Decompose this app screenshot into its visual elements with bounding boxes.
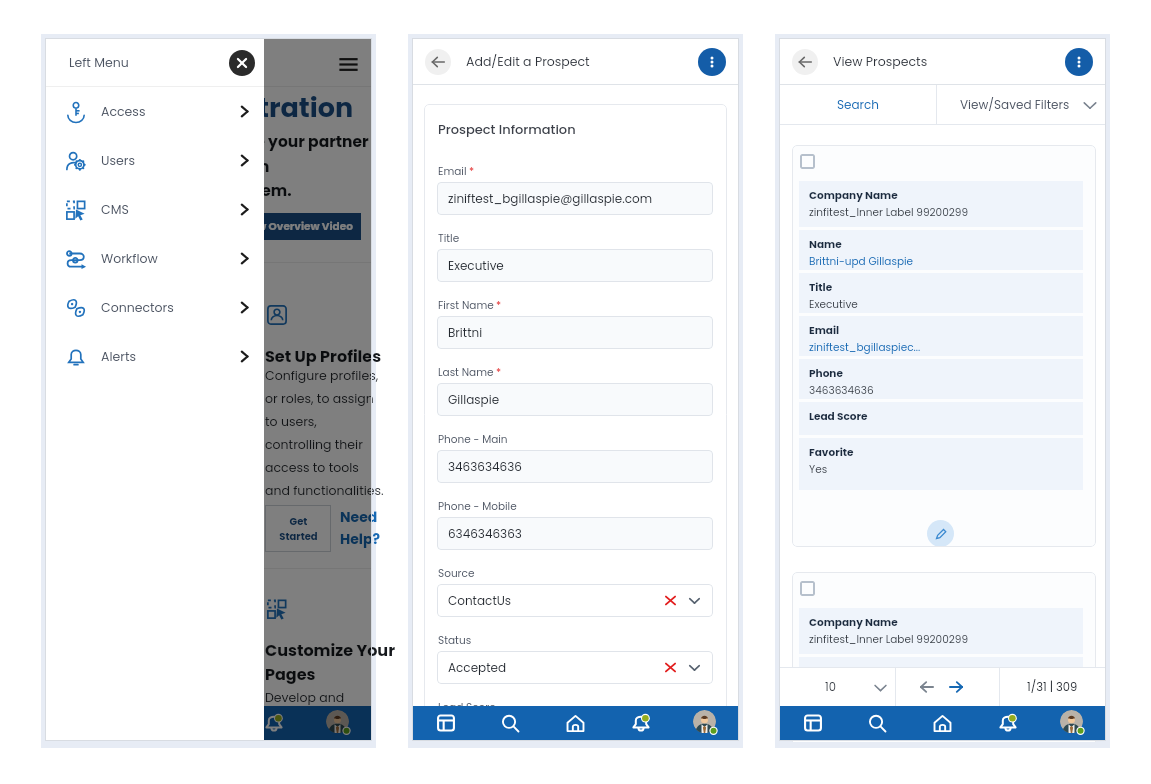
staticText: 3463634636 [809,383,874,398]
staticText: Brittni-upd Gillaspie [809,681,914,696]
staticText: Brittni-upd Gillaspie [809,254,914,269]
staticText: ziniftest_bgillaspiec... [809,340,921,355]
staticText: Access [101,103,146,120]
button[interactable]: More options [1065,48,1093,76]
staticText: Executive [448,257,702,274]
staticText: Name [809,664,842,679]
staticText: Title [809,280,833,295]
button[interactable]: Workflow [46,234,264,283]
staticText: Status [438,633,472,648]
button[interactable]: Notifications [608,706,673,740]
staticText: Yes [809,462,828,477]
button[interactable]: Close menu [229,50,255,76]
staticText: Phone - Main [438,432,508,447]
button[interactable]: Select row [800,581,815,596]
staticText: Executive [809,297,858,312]
button[interactable]: Alerts [46,332,264,381]
staticText: 6346346363 [448,525,702,542]
button[interactable]: Access [46,87,264,136]
button[interactable]: Edit [927,520,954,547]
staticText: Company Name [809,188,898,203]
staticText: Connectors [101,299,174,316]
button[interactable]: ContactUs [437,584,713,617]
staticText: Title [438,231,460,246]
button[interactable]: Profile [306,706,371,740]
button[interactable]: Connectors [46,283,264,332]
staticText: * [496,365,502,380]
staticText: ziniftest_bgillaspie@gillaspie.com [448,190,702,207]
staticText: Phone [809,366,843,381]
staticText: Alerts [101,348,136,365]
button[interactable]: Dashboard [413,706,478,740]
button[interactable]: ziniftest_bgillaspie@gillaspie.com [437,182,713,215]
staticText: zinfitest_Inner Label 99200299 [809,205,969,220]
staticText: Lead Score [438,700,558,715]
button[interactable]: Next page [945,676,967,698]
button[interactable]: CMS [46,185,264,234]
button[interactable]: Notifications [241,706,306,740]
button[interactable]: Get Started [265,505,331,552]
button[interactable]: Home [910,706,975,740]
button[interactable]: Back [425,49,451,75]
button[interactable]: Brittni [437,316,713,349]
button[interactable]: Home [543,706,608,740]
staticText: Company Name [809,615,898,630]
button[interactable]: Search [478,706,543,740]
button[interactable]: View/Saved Filters [937,85,1105,124]
staticText: Workflow [101,250,158,267]
staticText: Add/Edit a Prospect [466,53,590,70]
button[interactable]: 10 [780,668,895,706]
staticText: Configure profiles, or roles, to assign … [265,367,425,500]
button[interactable]: 6346346363 [437,517,713,550]
button[interactable]: 3463634636 [437,450,713,483]
staticText: * [496,298,502,313]
staticText: Search [837,96,880,113]
staticText: Email [809,323,840,338]
staticText: Accepted [448,659,664,676]
button[interactable]: Dashboard [780,706,845,740]
staticText: Phone - Mobile [438,499,517,514]
staticText: Brittni [448,324,702,341]
button[interactable]: Select row [800,154,815,169]
staticText: View/Saved Filters [960,96,1070,113]
button[interactable]: Back [792,49,818,75]
staticText: 10 [825,679,836,695]
staticText: View Prospects [833,53,928,70]
staticText: Source [438,566,475,581]
button[interactable]: Gillaspie [437,383,713,416]
staticText: Manage your partner platform ecosystem. [199,131,414,201]
button[interactable]: Accepted [437,651,713,684]
staticText: Favorite [809,445,854,460]
staticText: Gillaspie [448,391,702,408]
staticText: zinfitest_Inner Label 99200299 [809,632,969,647]
staticText: View Overview Video [240,219,353,234]
staticText: Left Menu [69,54,129,71]
staticText: CMS [101,201,129,218]
button[interactable]: More options [698,48,726,76]
staticText: Users [101,152,135,169]
staticText: 1/31 | 309 [1027,679,1078,695]
staticText: Need Help? [340,507,400,549]
button[interactable]: Profile [673,706,738,740]
staticText: * [469,164,475,179]
staticText: Lead Score [809,409,868,424]
button[interactable]: Menu [336,52,360,76]
staticText: Prospect Information [438,120,638,138]
staticText: Administration [142,89,372,127]
button[interactable]: Previous page [916,676,938,698]
button[interactable]: Search [780,85,936,124]
staticText: First Name [438,298,494,313]
staticText: Develop and [265,689,385,706]
button[interactable]: Notifications [975,706,1040,740]
button[interactable]: Users [46,136,264,185]
button[interactable]: Profile [1040,706,1105,740]
button[interactable]: Search [845,706,910,740]
button[interactable]: Executive [437,249,713,282]
button[interactable]: View Overview Video [231,213,361,240]
staticText: ContactUs [448,592,664,609]
staticText: Set Up Profiles [265,345,395,367]
staticText: 3463634636 [448,458,702,475]
